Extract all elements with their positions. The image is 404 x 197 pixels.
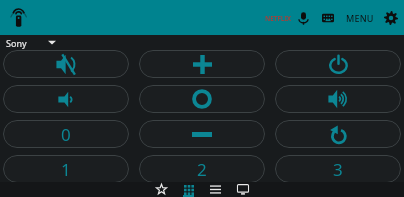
button[interactable]: Keypad: [175, 182, 202, 197]
button[interactable]: 0: [3, 120, 129, 148]
button[interactable]: 3: [275, 155, 401, 183]
button[interactable]: Favorites: [148, 182, 175, 197]
button[interactable]: Sony: [0, 35, 404, 50]
staticText: 2: [197, 158, 207, 181]
staticText: NETFLIX: [265, 14, 291, 23]
button[interactable]: Settings: [380, 7, 402, 29]
button[interactable]: Volume up: [275, 85, 401, 113]
button[interactable]: Apps list: [202, 182, 229, 197]
button[interactable]: Channel down: [139, 120, 265, 148]
button[interactable]: Voice search: [292, 7, 314, 29]
button[interactable]: 1: [3, 155, 129, 183]
button[interactable]: OK: [139, 85, 265, 113]
button[interactable]: NETFLIX: [265, 7, 291, 29]
button[interactable]: Mute: [3, 50, 129, 78]
button[interactable]: Power: [275, 50, 401, 78]
staticText: Sony: [6, 37, 27, 49]
button[interactable]: Volume down: [3, 85, 129, 113]
button[interactable]: Channel up: [139, 50, 265, 78]
staticText: MENU: [346, 12, 374, 24]
staticText: 0: [61, 123, 71, 146]
button[interactable]: Devices: [229, 182, 256, 197]
button[interactable]: MENU: [344, 8, 376, 28]
button[interactable]: 2: [139, 155, 265, 183]
button[interactable]: Remote control: [6, 5, 32, 31]
staticText: 3: [333, 158, 343, 181]
button[interactable]: Keyboard: [317, 7, 339, 29]
button[interactable]: Back: [275, 120, 401, 148]
staticText: 1: [61, 158, 71, 181]
